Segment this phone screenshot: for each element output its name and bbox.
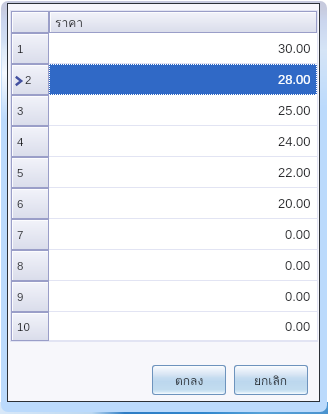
staticText: 1 [17,43,24,56]
staticText: 22.00 [278,165,311,180]
button[interactable]: 7 [11,219,317,250]
staticText: 4 [17,136,24,149]
button[interactable]: 8 [11,250,317,281]
staticText: 5 [17,167,24,180]
staticText: 0.00 [285,258,311,273]
staticText: 28.00 [278,72,311,87]
staticText: 7 [17,229,24,242]
staticText: 0.00 [285,227,311,242]
staticText: 9 [17,291,24,304]
staticText: 0.00 [285,289,311,304]
staticText: 10 [17,321,30,334]
button[interactable]: 1 [11,33,317,64]
button[interactable]: 10 [11,312,317,341]
staticText: ราคา [55,13,83,32]
staticText: ตกลง [175,371,204,390]
staticText: ยกเลิก [254,371,288,390]
staticText: 30.00 [278,41,311,56]
button[interactable]: 6 [11,188,317,219]
button[interactable]: 2 [11,64,317,95]
staticText: 3 [17,105,24,118]
staticText: 20.00 [278,196,311,211]
button[interactable]: 5 [11,157,317,188]
button[interactable]: ตกลง [153,366,225,394]
button[interactable]: 3 [11,95,317,126]
button[interactable]: 9 [11,281,317,312]
staticText: 24.00 [278,134,311,149]
staticText: 2 [25,74,32,87]
staticText: 8 [17,260,24,273]
staticText: 0.00 [285,319,311,334]
staticText: 25.00 [278,103,311,118]
button[interactable]: ยกเลิก [235,366,307,394]
button[interactable]: 4 [11,126,317,157]
staticText: 6 [17,198,24,211]
